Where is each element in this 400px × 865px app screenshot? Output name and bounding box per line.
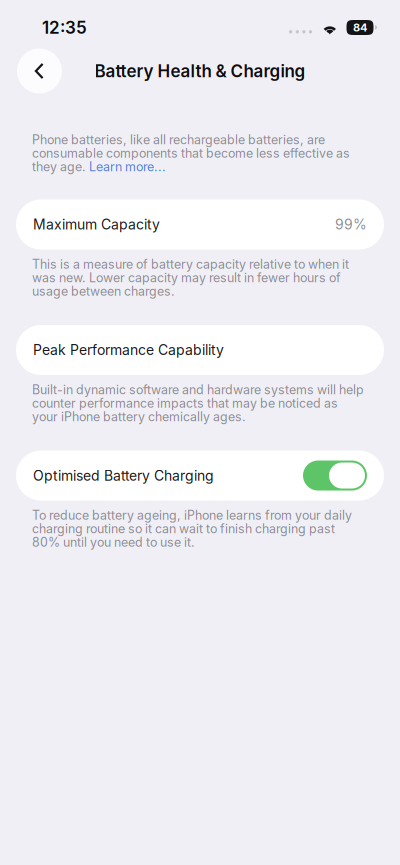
staticText: 12:35: [42, 17, 87, 38]
staticText: they age.: [32, 160, 89, 173]
button[interactable]: Optimised Battery Charging: [0, 450, 400, 500]
staticText: Battery Health & Charging: [94, 61, 305, 81]
staticText: 99%: [335, 216, 367, 233]
staticText: Phone batteries, like all rechargeable b…: [32, 133, 350, 160]
button[interactable]: Peak Performance Capability: [0, 325, 400, 375]
staticText: Peak Performance Capability: [33, 342, 224, 358]
staticText: Optimised Battery Charging: [33, 467, 214, 484]
staticText: Maximum Capacity: [33, 216, 160, 233]
staticText: To reduce battery ageing, iPhone learns …: [32, 508, 352, 549]
staticText: Built-in dynamic software and hardware s…: [32, 383, 364, 423]
staticText: This is a measure of battery capacity re…: [32, 257, 349, 298]
staticText: Learn more...: [89, 160, 166, 173]
staticText: 84: [353, 21, 367, 34]
button[interactable]: Back: [17, 48, 62, 93]
button[interactable]: Learn more...: [89, 160, 166, 173]
